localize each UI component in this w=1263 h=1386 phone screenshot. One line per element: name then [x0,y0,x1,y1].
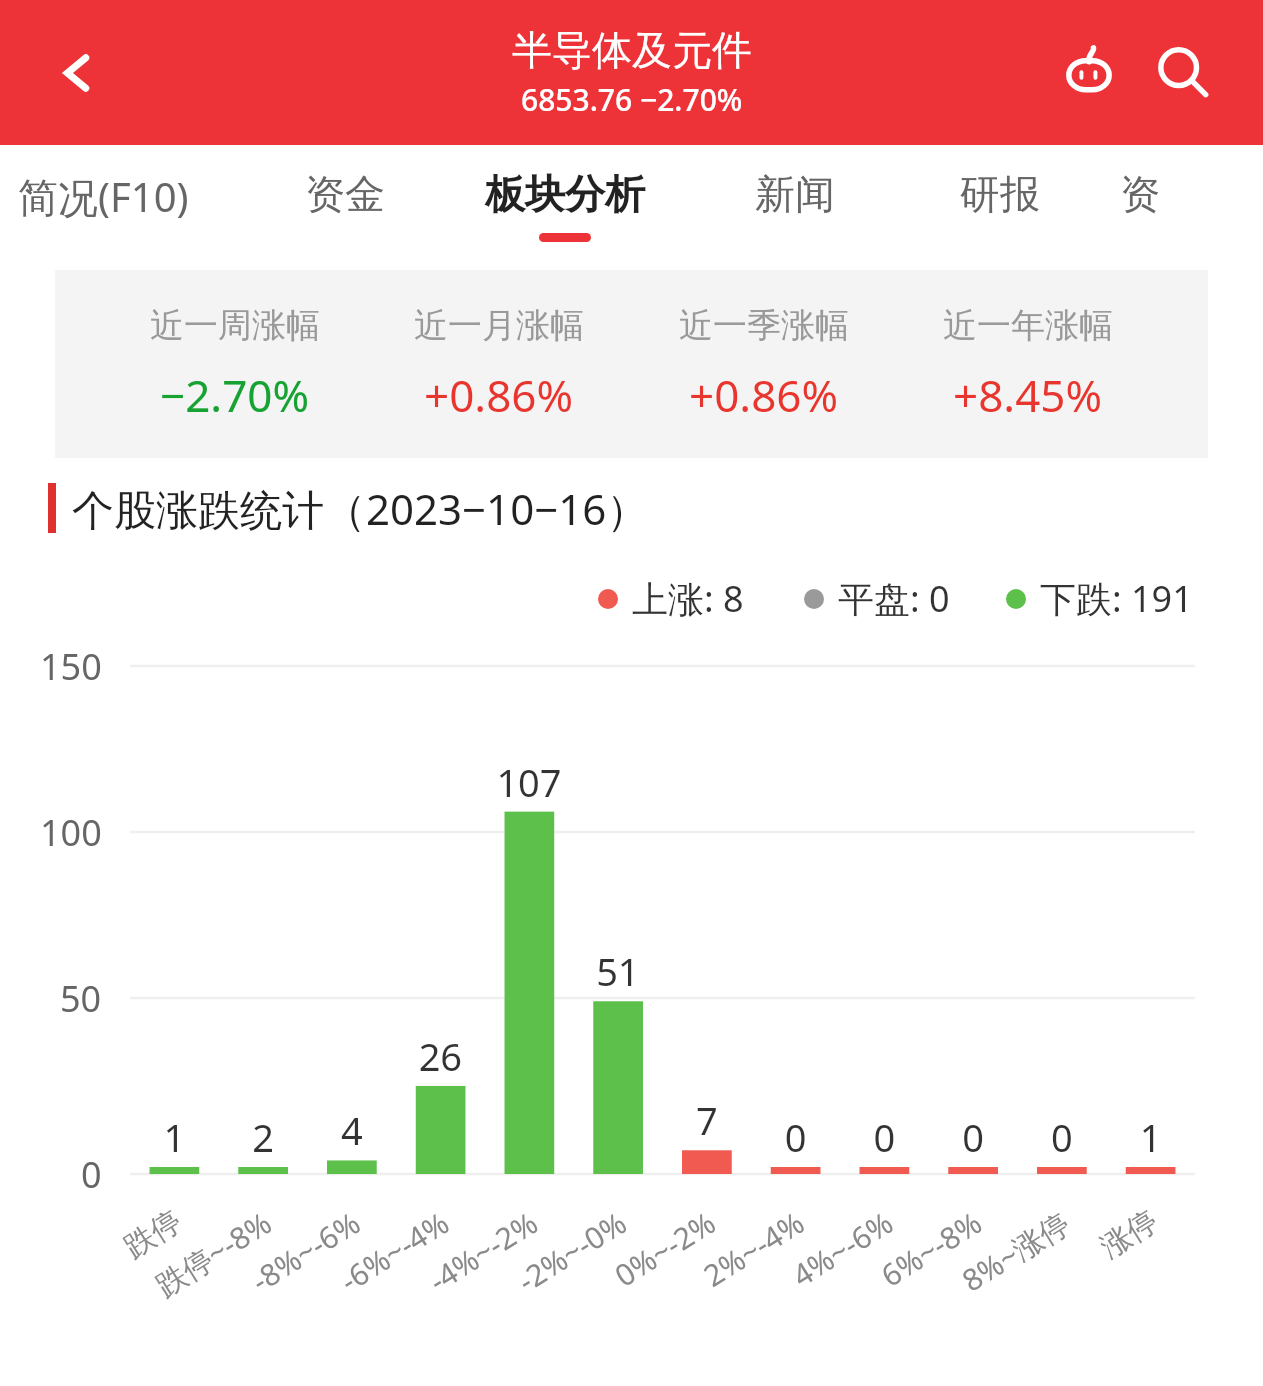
staticText: +0.86% [689,365,839,425]
staticText: +8.45% [953,365,1103,425]
button[interactable]: 资金 [250,145,440,265]
staticText: 资 [1120,169,1160,219]
staticText: 近一周涨幅 [150,304,320,347]
button[interactable]: 简况(F10) [0,145,228,265]
button[interactable]: 资 [1100,145,1180,265]
staticText: 6853.76 −2.70% [521,79,743,120]
staticText: 新闻 [755,169,835,219]
staticText: 个股涨跌统计（2023−10−16） [72,480,649,537]
button[interactable]: Search [1143,33,1223,113]
staticText: +0.86% [424,365,574,425]
staticText: 上涨: 8 [632,574,744,623]
staticText: 研报 [960,169,1040,219]
staticText: 近一季涨幅 [679,304,849,347]
staticText: 半导体及元件 [512,25,752,75]
button[interactable]: Assistant [1049,33,1129,113]
staticText: 近一月涨幅 [414,304,584,347]
button[interactable]: 研报 [900,145,1100,265]
staticText: 近一年涨幅 [943,304,1113,347]
staticText: 板块分析 [485,169,645,219]
button[interactable]: 板块分析 [440,145,690,265]
button[interactable]: Back [46,42,108,104]
staticText: 下跌: 191 [1040,574,1193,623]
button[interactable]: 新闻 [690,145,900,265]
staticText: 平盘: 0 [838,574,950,623]
staticText: −2.70% [160,365,310,425]
staticText: 资金 [305,169,385,219]
staticText: 简况(F10) [18,169,189,224]
